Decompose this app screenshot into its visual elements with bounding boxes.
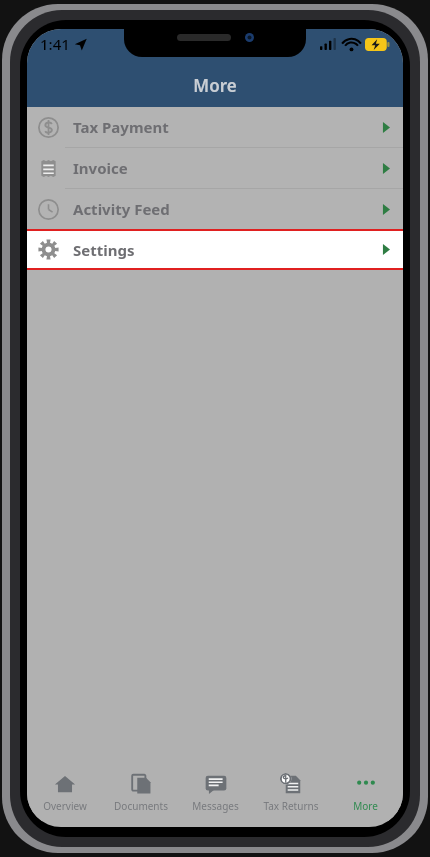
staticText: More bbox=[353, 799, 378, 813]
staticText: Tax Payment bbox=[73, 117, 169, 137]
staticText: Activity Feed bbox=[73, 199, 170, 219]
staticText: Tax Returns bbox=[263, 799, 319, 813]
staticText: 1:41 bbox=[40, 34, 70, 54]
button[interactable]: Documents bbox=[103, 765, 178, 821]
button[interactable]: Settings bbox=[27, 231, 403, 268]
staticText: More bbox=[193, 74, 237, 97]
button[interactable]: Invoice bbox=[27, 148, 403, 188]
staticText: Documents bbox=[114, 799, 168, 813]
button[interactable]: Tax Payment bbox=[27, 107, 403, 147]
staticText: Settings bbox=[73, 240, 135, 260]
button[interactable]: Messages bbox=[178, 765, 253, 821]
button[interactable]: Overview bbox=[27, 765, 103, 821]
staticText: Invoice bbox=[73, 158, 128, 178]
staticText: Overview bbox=[43, 799, 87, 813]
button[interactable]: Tax Returns bbox=[253, 765, 328, 821]
button[interactable]: Activity Feed bbox=[27, 189, 403, 229]
staticText: Messages bbox=[192, 799, 239, 813]
button[interactable]: More bbox=[328, 765, 403, 821]
